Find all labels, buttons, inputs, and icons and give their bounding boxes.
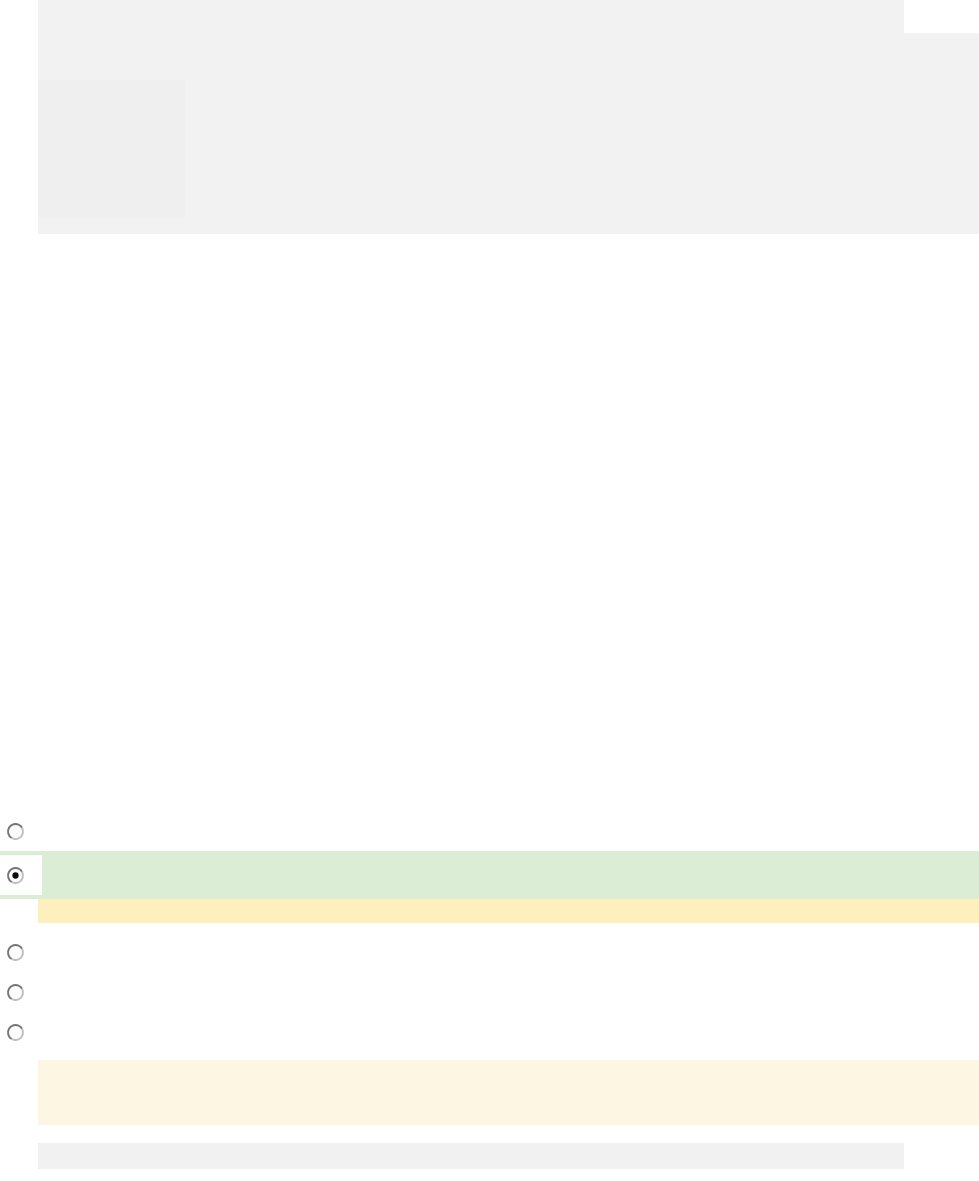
button[interactable]: Option 3 (0, 932, 979, 972)
button[interactable]: Option 5 (0, 1012, 979, 1052)
button[interactable]: Option 2, selected (0, 851, 979, 899)
button[interactable]: Option 1 (0, 812, 979, 851)
button[interactable]: Option 4 (0, 972, 979, 1012)
